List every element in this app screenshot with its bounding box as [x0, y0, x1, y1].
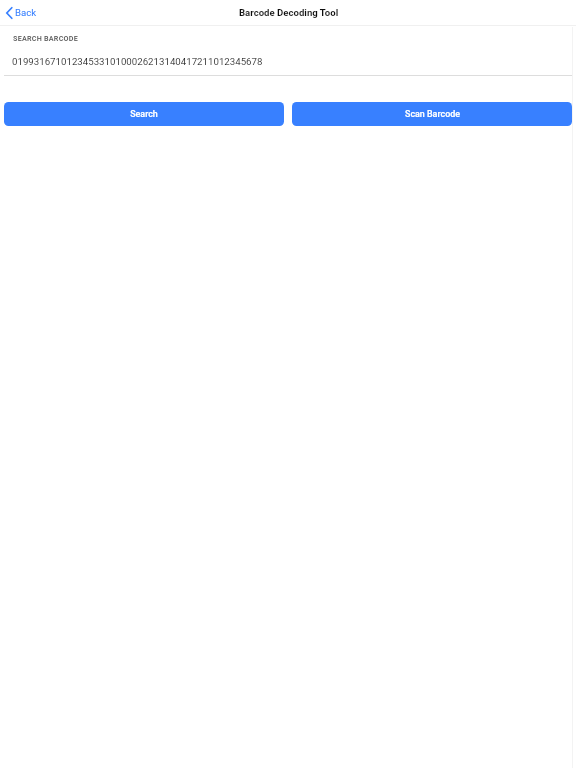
staticText: Barcode Decoding Tool: [239, 7, 339, 18]
button[interactable]: [4, 26, 572, 76]
button[interactable]: Scan Barcode: [292, 102, 572, 126]
button[interactable]: Search: [4, 102, 284, 126]
staticText: Scan Barcode: [405, 109, 460, 119]
staticText: 0199316710123453310100026213140417211012…: [12, 56, 263, 67]
other: Back: [5, 7, 12, 19]
staticText: SEARCH BARCODE: [13, 34, 78, 42]
staticText: Back: [15, 7, 37, 18]
staticText: Search: [130, 109, 158, 119]
button[interactable]: Back: [5, 0, 37, 25]
